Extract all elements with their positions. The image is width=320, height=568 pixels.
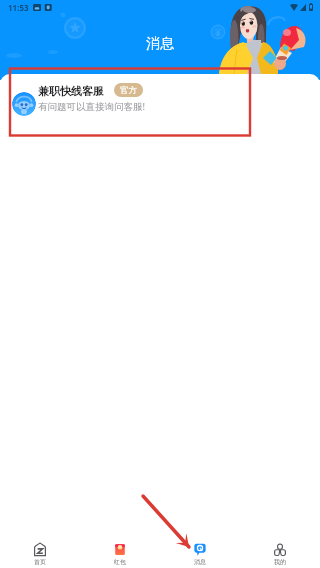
button[interactable]: 我的: [240, 532, 320, 568]
button[interactable]: 红包: [80, 532, 160, 568]
button[interactable]: 消息: [160, 532, 240, 568]
staticText: 我的: [274, 558, 286, 566]
staticText: 官方: [120, 85, 137, 96]
button[interactable]: 首页: [0, 532, 80, 568]
other: 首页: [34, 543, 46, 556]
other: 我的: [274, 543, 286, 556]
staticText: 兼职快线客服: [38, 84, 104, 98]
staticText: 消息: [194, 558, 206, 566]
other: 红包: [114, 543, 126, 556]
staticText: 首页: [34, 558, 46, 566]
staticText: 消息: [146, 35, 174, 53]
other: 消息: [194, 543, 206, 556]
staticText: 11:53: [8, 2, 29, 13]
button[interactable]: 兼职快线客服: [0, 74, 320, 136]
staticText: 有问题可以直接询问客服!: [38, 100, 146, 113]
staticText: 红包: [114, 558, 126, 566]
